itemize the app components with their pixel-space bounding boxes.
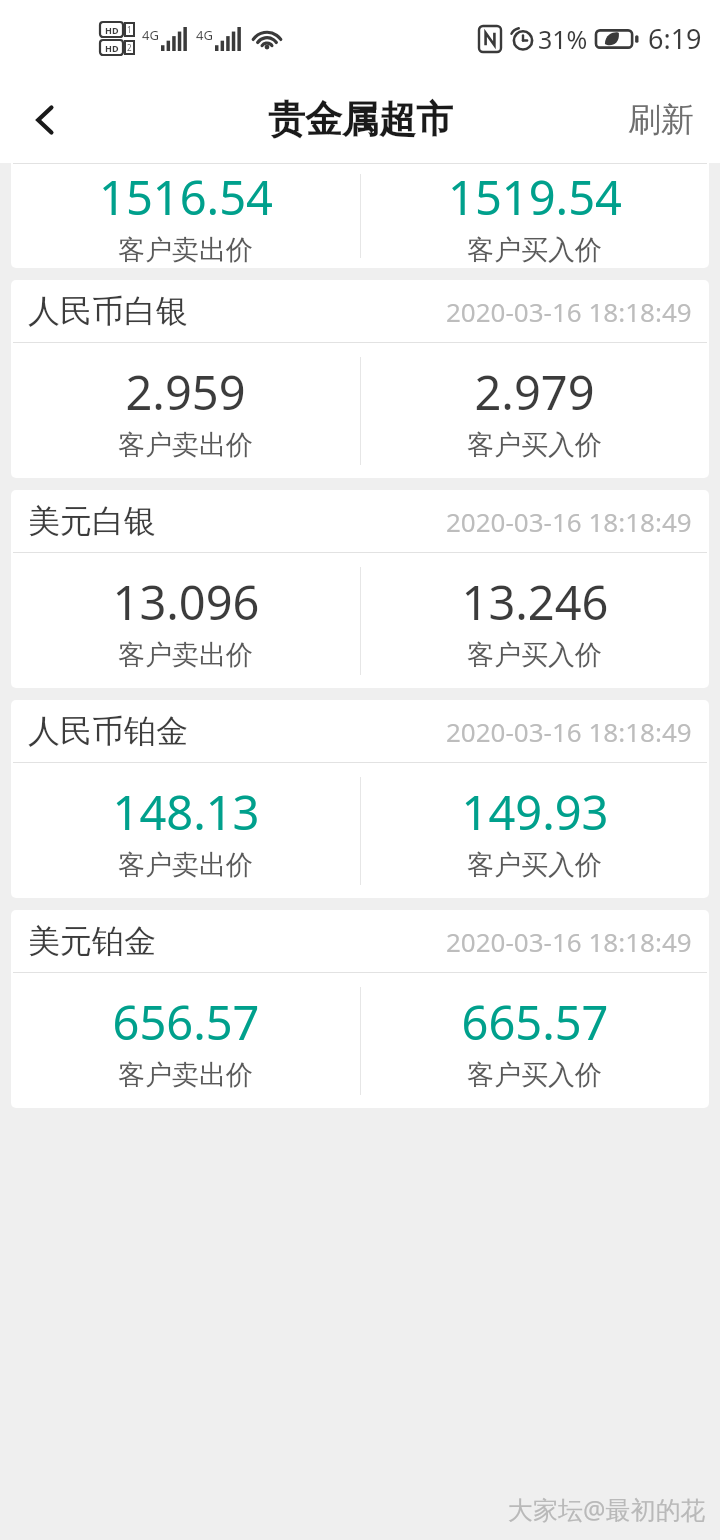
staticText: 贵金属超市 — [268, 96, 453, 143]
button[interactable]: 人民币铂金 — [11, 700, 709, 898]
staticText: 刷新 — [628, 99, 694, 141]
button[interactable]: 美元白银 — [11, 490, 709, 688]
staticText: 美元白银 — [28, 501, 156, 541]
staticText: 客户买入价 — [467, 428, 602, 462]
staticText: 2020-03-16 18:18:49 — [446, 714, 692, 749]
staticText: 665.57 — [461, 990, 609, 1054]
staticText: 客户卖出价 — [118, 233, 253, 267]
staticText: 客户买入价 — [467, 848, 602, 882]
staticText: 31% — [538, 22, 588, 56]
staticText: HD — [105, 42, 119, 54]
staticText: 13.096 — [112, 570, 260, 634]
staticText: 客户卖出价 — [118, 1058, 253, 1092]
button[interactable]: 人民币白银 — [11, 280, 709, 478]
staticText: 4G — [142, 26, 159, 44]
staticText: 2020-03-16 18:18:49 — [446, 924, 692, 959]
staticText: 148.13 — [112, 780, 260, 844]
staticText: 149.93 — [461, 780, 609, 844]
staticText: 1519.54 — [448, 165, 622, 229]
staticText: 1516.54 — [99, 165, 273, 229]
staticText: 大家坛@最初的花 — [508, 1492, 706, 1526]
staticText: 656.57 — [112, 990, 260, 1054]
staticText: 2 — [127, 42, 132, 53]
staticText: 1 — [127, 24, 132, 35]
button[interactable]: 1516.54 — [11, 163, 709, 268]
staticText: HD — [105, 24, 119, 36]
staticText: 人民币白银 — [28, 291, 188, 331]
staticText: 2.979 — [474, 360, 595, 424]
staticText: 客户卖出价 — [118, 428, 253, 462]
button[interactable]: 美元铂金 — [11, 910, 709, 1108]
staticText: 客户买入价 — [467, 233, 602, 267]
staticText: 美元铂金 — [28, 921, 156, 961]
staticText: 客户卖出价 — [118, 638, 253, 672]
staticText: 人民币铂金 — [28, 711, 188, 751]
staticText: 客户买入价 — [467, 638, 602, 672]
staticText: 2.959 — [125, 360, 246, 424]
button[interactable]: Back — [0, 76, 92, 163]
staticText: 13.246 — [461, 570, 609, 634]
staticText: 客户买入价 — [467, 1058, 602, 1092]
staticText: 2020-03-16 18:18:49 — [446, 294, 692, 329]
staticText: 客户卖出价 — [118, 848, 253, 882]
staticText: 2020-03-16 18:18:49 — [446, 504, 692, 539]
staticText: 4G — [196, 26, 213, 44]
staticText: 6:19 — [648, 20, 702, 57]
button[interactable]: 刷新 — [602, 76, 720, 163]
